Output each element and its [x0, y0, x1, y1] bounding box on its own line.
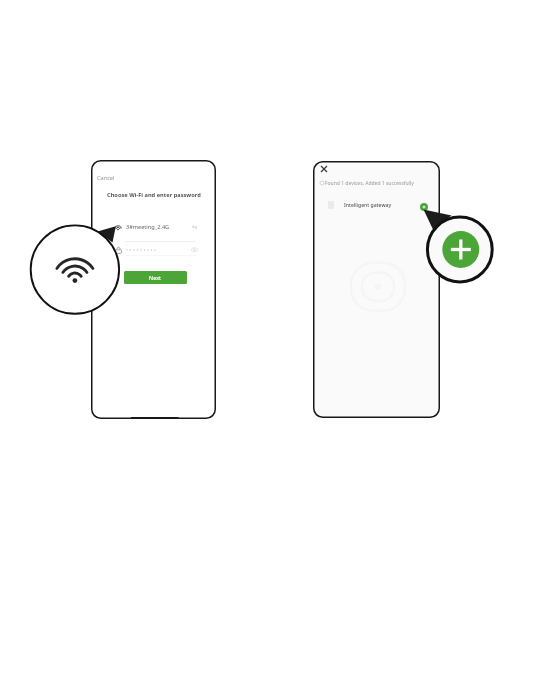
button[interactable]: Close [317, 162, 330, 175]
button[interactable]: Add device [422, 207, 495, 285]
staticText: Found 1 devices, Added 1 successfully [325, 180, 414, 187]
button[interactable]: 3#meeting_2.4G [114, 220, 186, 233]
button[interactable]: Cancel [97, 172, 121, 183]
button[interactable] [115, 244, 190, 255]
staticText: 3#meeting_2.4G [126, 223, 170, 231]
button[interactable]: Added [420, 203, 428, 211]
staticText: Choose Wi-Fi and enter password [107, 191, 201, 199]
staticText: Next [149, 274, 162, 281]
button[interactable]: Show password [191, 247, 198, 252]
button[interactable]: Intelligent gateway [324, 198, 429, 212]
staticText: Cancel [97, 174, 115, 182]
staticText: Ag [192, 224, 198, 230]
button[interactable]: Wi-Fi network [28, 222, 120, 316]
staticText: Intelligent gateway [344, 202, 392, 209]
button[interactable]: Next [124, 271, 187, 284]
